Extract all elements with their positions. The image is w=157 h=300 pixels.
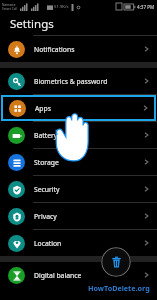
staticText: 4:37 PM	[137, 4, 155, 10]
other: Tap pointer	[52, 110, 94, 162]
button[interactable]: Notifications	[0, 36, 157, 62]
staticText: Security	[34, 185, 60, 194]
staticText: Biometrics & password	[34, 77, 108, 86]
button[interactable]: Biometrics & password	[0, 68, 157, 94]
button[interactable]: Battery	[0, 122, 157, 148]
staticText: Apps	[35, 104, 51, 113]
staticText: Namaste	[2, 3, 16, 7]
staticText: Settings	[10, 16, 54, 32]
button[interactable]: Location	[0, 230, 157, 256]
staticText: Smart Call	[2, 7, 18, 11]
button[interactable]: Storage	[0, 149, 157, 175]
staticText: Location	[34, 239, 62, 248]
button[interactable]: Digital balance	[0, 262, 157, 288]
staticText: HowToDelete.org	[88, 283, 150, 293]
button[interactable]: Delete	[101, 247, 131, 277]
staticText: 51.9K/s	[54, 4, 69, 10]
staticText: Battery	[34, 131, 58, 140]
button[interactable]: Security	[0, 176, 157, 202]
staticText: Privacy	[34, 212, 57, 221]
staticText: Notifications	[34, 45, 75, 54]
button[interactable]: Privacy	[0, 203, 157, 229]
staticText: Storage	[34, 158, 59, 167]
button[interactable]: Apps	[1, 95, 156, 121]
staticText: Digital balance	[34, 271, 82, 280]
